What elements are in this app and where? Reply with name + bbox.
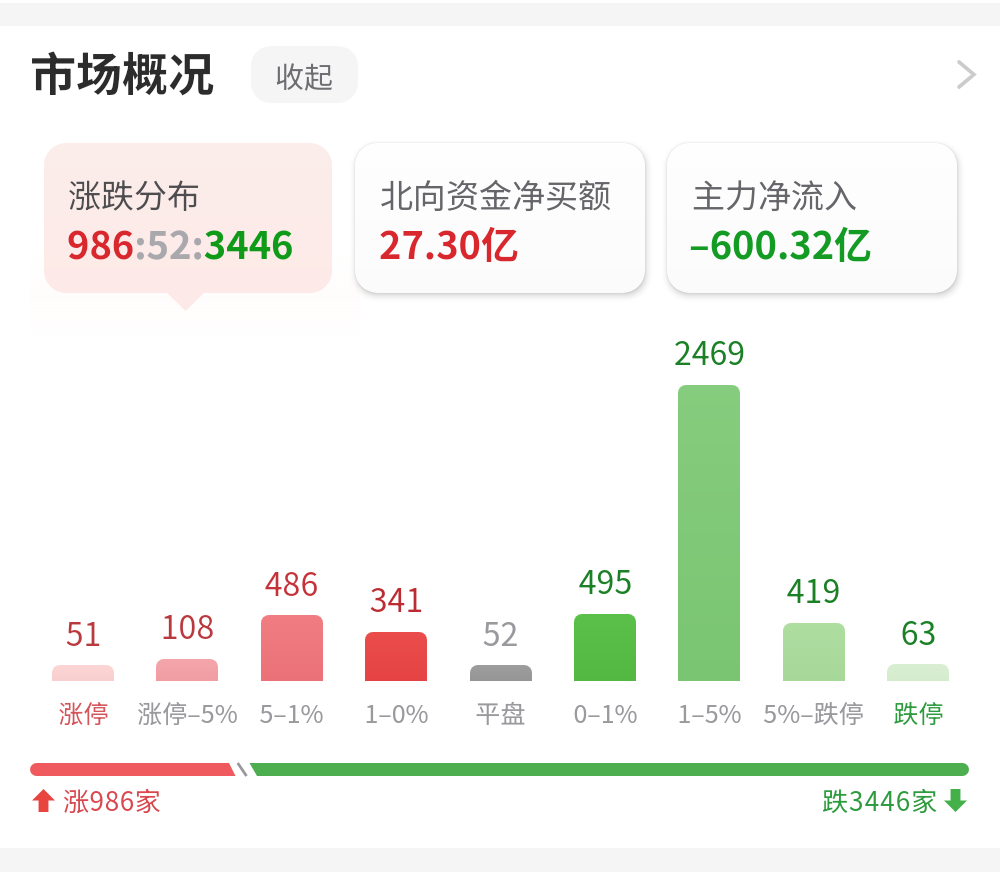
button[interactable] bbox=[866, 335, 970, 725]
staticText: 1–0% bbox=[330, 694, 463, 730]
staticText: 108 bbox=[126, 602, 249, 648]
staticText: 2469 bbox=[648, 328, 771, 374]
button[interactable] bbox=[553, 335, 657, 725]
staticText: 市场概况 bbox=[30, 38, 214, 105]
button[interactable]: 收起 bbox=[251, 46, 358, 103]
button[interactable] bbox=[135, 335, 239, 725]
staticText: 27.30亿 bbox=[379, 215, 520, 270]
staticText: 341 bbox=[335, 575, 458, 621]
button[interactable]: 北向资金净买额 bbox=[355, 143, 645, 293]
staticText: 北向资金净买额 bbox=[380, 170, 611, 218]
staticText: 跌3446家 bbox=[822, 781, 939, 817]
button[interactable]: 主力净流入 bbox=[667, 143, 957, 293]
button[interactable]: 查看更多 bbox=[938, 46, 994, 102]
staticText: 涨986家 bbox=[63, 781, 162, 817]
staticText: 1–5% bbox=[643, 694, 776, 730]
button[interactable] bbox=[449, 335, 553, 725]
staticText: 63 bbox=[857, 608, 980, 654]
button[interactable]: 涨跌分布 bbox=[44, 143, 332, 293]
staticText: 主力净流入 bbox=[692, 170, 857, 218]
staticText: 986:52:3446 bbox=[67, 215, 294, 270]
staticText: 涨跌分布 bbox=[68, 170, 200, 218]
button[interactable] bbox=[240, 335, 344, 725]
staticText: 486 bbox=[230, 559, 353, 605]
button[interactable] bbox=[31, 335, 135, 725]
staticText: 419 bbox=[752, 566, 875, 612]
staticText: 涨停 bbox=[17, 694, 150, 730]
staticText: 52 bbox=[439, 609, 562, 655]
button[interactable] bbox=[762, 335, 866, 725]
button[interactable] bbox=[657, 335, 761, 725]
staticText: 5%–跌停 bbox=[747, 694, 880, 730]
staticText: 跌停 bbox=[852, 694, 985, 730]
staticText: 5–1% bbox=[225, 694, 358, 730]
staticText: 收起 bbox=[275, 54, 334, 96]
staticText: 平盘 bbox=[434, 694, 567, 730]
staticText: 0–1% bbox=[539, 694, 672, 730]
staticText: 51 bbox=[22, 609, 145, 655]
button[interactable] bbox=[344, 335, 448, 725]
button[interactable]: 跌3446家 bbox=[818, 783, 973, 819]
button[interactable]: 涨986家 bbox=[20, 783, 170, 819]
staticText: 495 bbox=[544, 557, 667, 603]
staticText: 涨停–5% bbox=[121, 694, 254, 730]
staticText: –600.32亿 bbox=[689, 215, 873, 270]
